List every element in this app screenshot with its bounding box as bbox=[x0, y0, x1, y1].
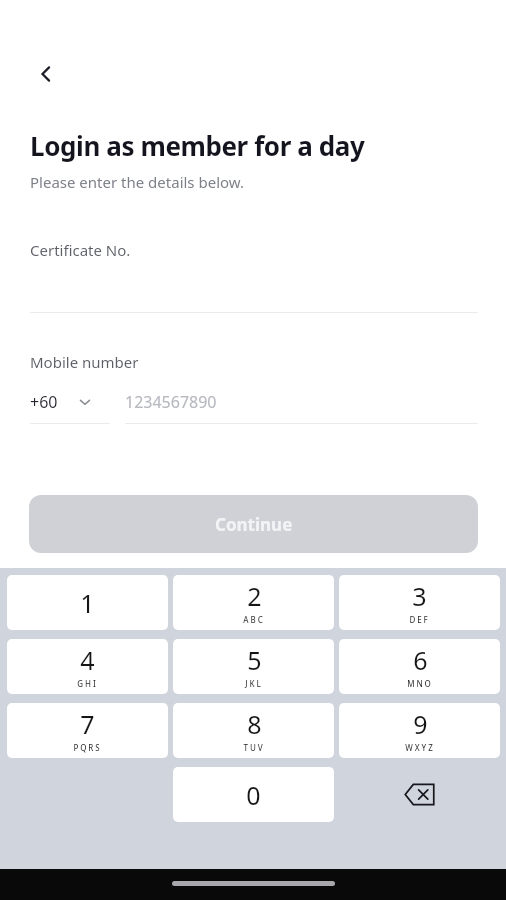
staticText: 9 bbox=[413, 707, 428, 741]
button[interactable]: 5 bbox=[173, 639, 334, 694]
staticText: DEF bbox=[409, 614, 430, 625]
staticText: 1 bbox=[80, 586, 95, 620]
staticText: Please enter the details below. bbox=[30, 172, 244, 192]
staticText: 8 bbox=[247, 707, 262, 741]
button[interactable]: 2 bbox=[173, 575, 334, 630]
button[interactable]: 4 bbox=[7, 639, 168, 694]
staticText: Continue bbox=[215, 513, 293, 536]
staticText: MNO bbox=[407, 678, 433, 689]
button[interactable]: Certificate No. bbox=[30, 240, 478, 315]
button[interactable]: +60 bbox=[30, 386, 110, 418]
staticText: Login as member for a day bbox=[30, 128, 365, 163]
staticText: GHI bbox=[77, 678, 98, 689]
button[interactable]: 1 bbox=[7, 575, 168, 630]
staticText: 4 bbox=[80, 643, 95, 677]
staticText: 6 bbox=[413, 643, 428, 677]
staticText: Certificate No. bbox=[30, 240, 131, 260]
staticText: 1234567890 bbox=[125, 391, 217, 413]
button[interactable]: Back bbox=[26, 54, 66, 94]
staticText: +60 bbox=[30, 391, 58, 413]
staticText: 5 bbox=[247, 643, 262, 677]
staticText: WXYZ bbox=[405, 742, 435, 753]
button[interactable]: Backspace bbox=[339, 767, 500, 822]
button[interactable]: 9 bbox=[339, 703, 500, 758]
staticText: 7 bbox=[80, 707, 95, 741]
staticText: 2 bbox=[247, 579, 262, 613]
button[interactable]: 8 bbox=[173, 703, 334, 758]
button[interactable]: Continue bbox=[29, 495, 478, 553]
staticText: 3 bbox=[412, 579, 427, 613]
staticText: JKL bbox=[245, 678, 263, 689]
button[interactable]: 6 bbox=[339, 639, 500, 694]
staticText: PQRS bbox=[73, 742, 102, 753]
button[interactable]: 1234567890 bbox=[125, 386, 478, 418]
staticText: 0 bbox=[246, 778, 261, 812]
button[interactable]: 0 bbox=[173, 767, 334, 822]
staticText: ABC bbox=[243, 614, 265, 625]
button[interactable]: 3 bbox=[339, 575, 500, 630]
staticText: TUV bbox=[243, 742, 265, 753]
button[interactable]: 7 bbox=[7, 703, 168, 758]
staticText: Mobile number bbox=[30, 352, 139, 372]
